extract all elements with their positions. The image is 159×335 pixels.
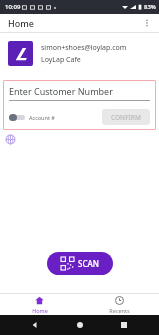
button[interactable]: CONFIRM (102, 109, 150, 125)
button[interactable]: Home (71, 316, 89, 334)
button[interactable]: Globe (5, 134, 16, 145)
staticText: Home (8, 17, 34, 29)
button[interactable]: Recent apps (115, 316, 133, 334)
staticText: Home (32, 307, 48, 313)
staticText: Enter Customer Number (9, 85, 113, 97)
button[interactable]: SCAN (47, 252, 113, 275)
staticText: LoyLap Cafe (41, 55, 81, 65)
button[interactable]: Home (0, 294, 79, 315)
button[interactable]: Recents (79, 294, 159, 315)
staticText: 83% (144, 3, 156, 11)
staticText: Account # (29, 114, 55, 121)
button[interactable]: simon+shoes@loylap.com (8, 41, 151, 66)
staticText: 10:09 (5, 3, 21, 11)
button[interactable]: Account # (9, 114, 55, 121)
staticText: CONFIRM (111, 113, 141, 122)
staticText: SCAN (78, 258, 99, 269)
button[interactable]: Back (26, 316, 44, 334)
button[interactable]: More options (139, 15, 155, 31)
staticText: simon+shoes@loylap.com (41, 43, 127, 53)
staticText: Recents (109, 307, 130, 313)
button[interactable]: Enter Customer Number (9, 85, 150, 101)
